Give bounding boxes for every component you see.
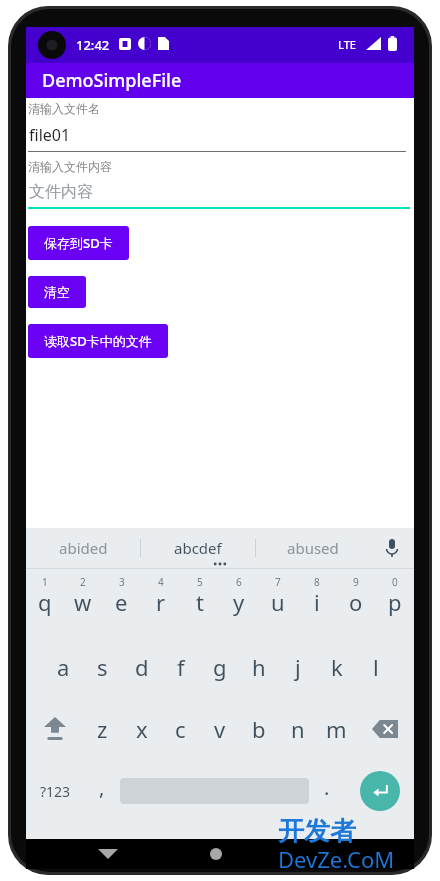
button[interactable]: 2 [64, 574, 102, 636]
staticText: 12:42 [76, 36, 110, 54]
button[interactable]: m [317, 698, 356, 760]
button[interactable]: ?123 [26, 760, 84, 822]
button[interactable]: , [84, 760, 120, 822]
staticText: DemoSimpleFile [42, 68, 182, 93]
staticText: 8 [314, 575, 320, 589]
button[interactable]: l [356, 636, 395, 698]
button[interactable]: d [122, 636, 161, 698]
staticText: 2 [80, 575, 86, 589]
button[interactable]: Back [98, 847, 118, 861]
button[interactable]: c [161, 698, 200, 760]
button[interactable]: 5 [180, 574, 219, 636]
staticText: o [349, 587, 363, 617]
staticText: d [135, 652, 149, 682]
staticText: z [97, 714, 108, 744]
button[interactable]: abused [256, 528, 370, 568]
button[interactable]: 0 [375, 574, 414, 636]
staticText: 7 [275, 575, 281, 589]
staticText: x [136, 714, 148, 744]
staticText: 保存到SD卡 [44, 234, 113, 252]
button[interactable]: Home [210, 848, 222, 860]
staticText: b [252, 714, 266, 744]
button[interactable]: j [278, 636, 317, 698]
button[interactable]: 清空 [28, 276, 86, 308]
staticText: , [99, 774, 105, 801]
staticText: abused [287, 538, 339, 558]
staticText: 清输入文件内容 [28, 159, 112, 174]
staticText: i [314, 587, 320, 617]
staticText: 6 [236, 575, 242, 589]
button[interactable]: z [83, 698, 122, 760]
staticText: q [38, 587, 52, 617]
button[interactable]: 保存到SD卡 [28, 226, 129, 260]
staticText: k [331, 652, 343, 682]
button[interactable]: f [161, 636, 200, 698]
staticText: l [373, 652, 379, 682]
staticText: 0 [392, 575, 398, 589]
staticText: abcdef [174, 538, 222, 558]
staticText: h [252, 652, 266, 682]
staticText: 1 [42, 575, 48, 589]
button[interactable]: a [44, 636, 83, 698]
staticText: e [115, 587, 128, 617]
staticText: v [214, 714, 226, 744]
staticText: w [74, 587, 92, 617]
staticText: r [156, 587, 166, 617]
button[interactable]: 4 [141, 574, 180, 636]
button[interactable]: 3 [102, 574, 141, 636]
staticText: 4 [158, 575, 164, 589]
button[interactable]: Backspace [356, 698, 414, 760]
staticText: file01 [29, 124, 71, 146]
staticText: j [295, 652, 301, 682]
staticText: LTE [338, 37, 356, 52]
staticText: c [175, 714, 186, 744]
staticText: 清空 [44, 284, 70, 300]
button[interactable]: g [200, 636, 239, 698]
staticText: DevZe.CoM [278, 844, 395, 874]
staticText: u [271, 587, 285, 617]
button[interactable]: Voice input [370, 528, 414, 568]
button[interactable]: 读取SD卡中的文件 [28, 324, 168, 358]
staticText: t [196, 587, 204, 617]
staticText: 3 [119, 575, 125, 589]
button[interactable]: abided [26, 528, 140, 568]
staticText: 清输入文件名 [28, 101, 100, 116]
button[interactable]: 7 [258, 574, 297, 636]
staticText: ?123 [40, 782, 71, 801]
button[interactable]: abcdef [141, 528, 255, 568]
button[interactable]: n [278, 698, 317, 760]
staticText: 读取SD卡中的文件 [44, 332, 152, 350]
staticText: 5 [197, 575, 203, 589]
button[interactable]: b [239, 698, 278, 760]
staticText: f [177, 652, 185, 682]
button[interactable]: . [309, 760, 345, 822]
staticText: 9 [353, 575, 359, 589]
staticText: s [97, 652, 108, 682]
button[interactable]: k [317, 636, 356, 698]
button[interactable]: 8 [297, 574, 336, 636]
button[interactable]: Enter [345, 760, 414, 822]
button[interactable]: s [83, 636, 122, 698]
staticText: 开发者 [278, 815, 356, 848]
staticText: a [57, 652, 70, 682]
button[interactable]: x [122, 698, 161, 760]
button[interactable]: 9 [336, 574, 375, 636]
staticText: g [213, 652, 227, 682]
staticText: y [233, 587, 245, 617]
button[interactable]: h [239, 636, 278, 698]
staticText: m [326, 714, 347, 744]
staticText: abided [59, 538, 108, 558]
button[interactable]: Shift [26, 698, 83, 760]
button[interactable]: 6 [219, 574, 258, 636]
button[interactable]: v [200, 698, 239, 760]
button[interactable]: 1 [26, 574, 64, 636]
staticText: 文件内容 [29, 182, 93, 202]
staticText: . [324, 774, 330, 801]
staticText: n [291, 714, 305, 744]
staticText: p [388, 587, 402, 617]
